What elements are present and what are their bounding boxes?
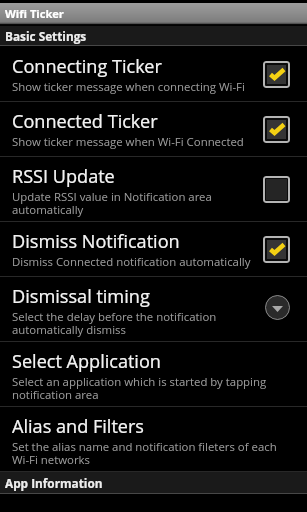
staticText: RSSI Update bbox=[12, 164, 115, 189]
staticText: Dismiss Notification bbox=[12, 229, 180, 254]
staticText: Set the alias name and notification file… bbox=[12, 439, 277, 467]
staticText: Dismissal timing bbox=[12, 284, 150, 309]
button[interactable]: Dismiss Notification bbox=[0, 222, 307, 277]
button[interactable]: Connected Ticker bbox=[0, 102, 307, 157]
staticText: Update RSSI value in Notification area a… bbox=[12, 189, 212, 217]
button[interactable]: Select Application bbox=[0, 342, 307, 407]
staticText: Basic Settings bbox=[5, 28, 87, 44]
staticText: Connected Ticker bbox=[12, 109, 158, 134]
other: Unchecked bbox=[263, 176, 290, 203]
other: Checked bbox=[263, 61, 290, 88]
staticText: Wifi Ticker bbox=[5, 6, 64, 21]
staticText: Select an application which is started b… bbox=[12, 374, 267, 402]
staticText: Dismiss Connected notification automatic… bbox=[12, 254, 251, 270]
staticText: App Information bbox=[5, 475, 103, 491]
other: Checked bbox=[263, 236, 290, 263]
staticText: Show ticker message when connecting Wi-F… bbox=[12, 79, 245, 95]
button[interactable]: Connecting Ticker bbox=[0, 46, 307, 102]
staticText: Connecting Ticker bbox=[12, 54, 162, 79]
other: Open dropdown bbox=[265, 295, 290, 320]
button[interactable]: Alias and Filters bbox=[0, 407, 307, 472]
staticText: Show ticker message when Wi-Fi Connected bbox=[12, 134, 244, 150]
button[interactable]: Dismissal timing bbox=[0, 277, 307, 342]
button[interactable]: RSSI Update bbox=[0, 157, 307, 222]
staticText: Select the delay before the notification… bbox=[12, 309, 217, 337]
staticText: Select Application bbox=[12, 349, 161, 374]
staticText: Alias and Filters bbox=[12, 414, 145, 439]
other: Checked bbox=[263, 116, 290, 143]
